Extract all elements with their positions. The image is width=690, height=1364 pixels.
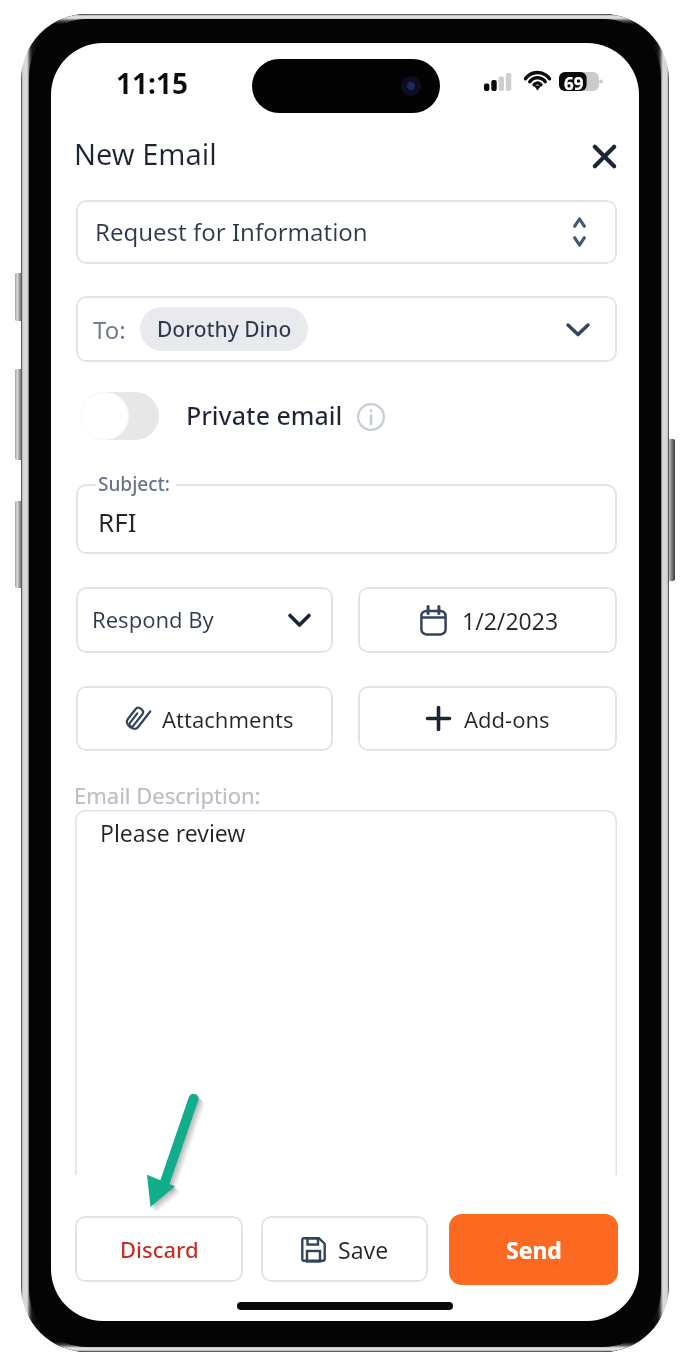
button[interactable]: Send [449,1214,618,1285]
button[interactable]: RFI [76,484,617,554]
staticText: Email Description: [74,780,261,810]
staticText: New Email [74,134,217,173]
staticText: Send [506,1234,562,1265]
button[interactable]: Save [261,1216,428,1282]
staticText: Please review [100,817,246,848]
button[interactable]: Request for Information [76,200,617,264]
staticText: Discard [120,1234,199,1264]
button[interactable]: Private email toggle [81,392,159,440]
staticText: Save [338,1234,389,1265]
staticText: RFI [98,504,137,539]
staticText: 1/2/2023 [462,605,559,636]
staticText: Subject: [98,471,170,497]
staticText: Attachments [162,704,294,734]
staticText: Request for Information [95,215,368,248]
button[interactable]: Add-ons [358,686,617,751]
staticText: 69 [564,72,584,95]
staticText: Add-ons [464,704,550,734]
staticText: Dorothy Dino [157,315,292,344]
button[interactable]: Please review [75,810,617,1175]
button[interactable]: 1/2/2023 [358,587,617,653]
button[interactable]: Dorothy Dino [140,307,308,351]
button[interactable]: Discard [75,1216,243,1282]
button[interactable]: Attachments [76,686,333,751]
button[interactable]: Respond By [76,587,333,653]
staticText: 11:15 [116,64,188,102]
staticText: To: [93,313,126,346]
button[interactable]: Info [351,397,391,437]
staticText: Respond By [92,604,214,634]
button[interactable]: Close [584,136,625,177]
button[interactable]: To: [76,296,617,362]
staticText: Private email [186,398,343,432]
